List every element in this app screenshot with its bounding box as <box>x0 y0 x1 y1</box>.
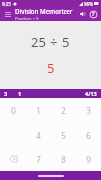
staticText: 7 <box>36 154 41 165</box>
staticText: 8 <box>61 154 66 165</box>
button[interactable]: 1 <box>26 98 51 123</box>
staticText: 5 <box>47 59 55 77</box>
button[interactable]: Open navigation menu <box>3 10 12 19</box>
staticText: 5 <box>62 33 70 51</box>
button[interactable]: 8 <box>51 147 76 171</box>
staticText: 3 <box>86 105 91 116</box>
staticText: 9:25 <box>2 1 11 7</box>
button[interactable]: Help <box>88 9 98 19</box>
button[interactable]: Toggle sound <box>78 9 88 19</box>
staticText: 1 <box>18 90 22 97</box>
button[interactable]: 4 <box>26 123 51 147</box>
staticText: ÷ <box>50 33 58 51</box>
button[interactable]: 7 <box>26 147 51 171</box>
staticText: 4 <box>36 130 41 141</box>
button[interactable]: 5 <box>51 123 76 147</box>
button[interactable]: 9 <box>76 147 101 171</box>
staticText: Practice: ÷ 5 <box>15 16 39 21</box>
staticText: 2 <box>61 105 66 116</box>
staticText: ? <box>92 11 95 18</box>
staticText: 6 <box>86 130 91 141</box>
staticText: Division Memorizer <box>15 7 73 15</box>
staticText: 0 <box>11 105 16 116</box>
staticText: 25 <box>31 33 46 51</box>
button[interactable]: Backspace <box>0 147 26 171</box>
button[interactable]: 2 <box>51 98 76 123</box>
staticText: 96% <box>84 1 93 7</box>
button[interactable]: 3 <box>76 98 101 123</box>
staticText: 9 <box>86 154 91 165</box>
staticText: 3 <box>4 90 8 97</box>
staticText: 1 <box>36 105 41 116</box>
button[interactable]: 0 <box>0 98 26 123</box>
button[interactable]: 6 <box>76 123 101 147</box>
staticText: 4/13 <box>85 90 97 97</box>
staticText: 5 <box>61 130 66 141</box>
